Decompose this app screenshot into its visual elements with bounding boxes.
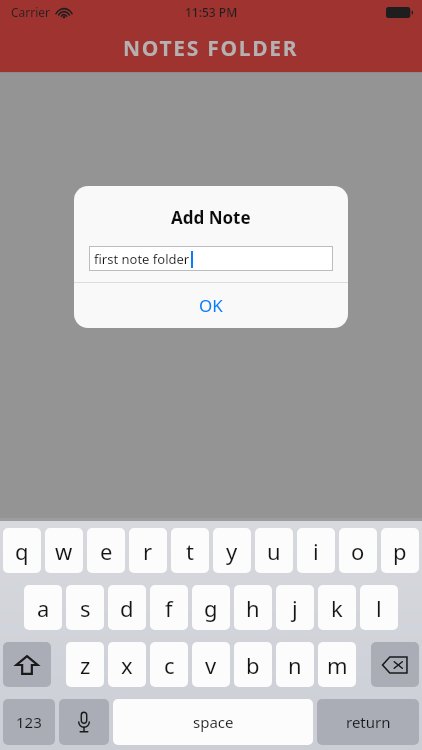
staticText: NOTES FOLDER xyxy=(123,34,299,63)
button[interactable]: z xyxy=(66,642,104,687)
staticText: Carrier xyxy=(11,4,51,20)
staticText: x xyxy=(121,650,133,680)
staticText: t xyxy=(186,536,194,566)
button[interactable]: Shift xyxy=(3,642,51,687)
button[interactable]: x xyxy=(108,642,146,687)
staticText: n xyxy=(288,650,302,680)
button[interactable]: o xyxy=(339,528,377,573)
staticText: r xyxy=(143,536,153,566)
button[interactable]: Dictation xyxy=(59,699,109,745)
staticText: first note folder xyxy=(94,250,190,268)
button[interactable]: a xyxy=(24,585,62,630)
staticText: return xyxy=(346,712,391,732)
staticText: v xyxy=(205,650,217,680)
button[interactable]: m xyxy=(318,642,356,687)
staticText: d xyxy=(120,593,134,623)
button[interactable]: b xyxy=(234,642,272,687)
staticText: h xyxy=(246,593,260,623)
button[interactable]: f xyxy=(150,585,188,630)
button[interactable]: q xyxy=(3,528,41,573)
staticText: e xyxy=(100,536,113,566)
staticText: k xyxy=(331,593,343,623)
button[interactable]: t xyxy=(171,528,209,573)
button[interactable]: first note folder xyxy=(89,246,333,271)
button[interactable]: 123 xyxy=(3,699,55,745)
staticText: c xyxy=(164,650,175,680)
staticText: u xyxy=(267,536,281,566)
button[interactable]: space xyxy=(113,699,313,745)
staticText: a xyxy=(37,593,50,623)
button[interactable]: p xyxy=(381,528,419,573)
staticText: s xyxy=(80,593,91,623)
button[interactable]: return xyxy=(317,699,419,745)
staticText: f xyxy=(165,593,173,623)
staticText: p xyxy=(393,536,407,566)
button[interactable]: h xyxy=(234,585,272,630)
button[interactable]: c xyxy=(150,642,188,687)
button[interactable]: n xyxy=(276,642,314,687)
button[interactable]: s xyxy=(66,585,104,630)
staticText: z xyxy=(80,650,91,680)
staticText: w xyxy=(55,536,73,566)
staticText: b xyxy=(246,650,260,680)
button[interactable]: k xyxy=(318,585,356,630)
staticText: q xyxy=(15,536,29,566)
staticText: m xyxy=(327,650,348,680)
button[interactable]: r xyxy=(129,528,167,573)
button[interactable]: Backspace xyxy=(371,642,419,687)
staticText: space xyxy=(193,712,234,732)
staticText: OK xyxy=(199,294,223,317)
button[interactable]: l xyxy=(360,585,398,630)
button[interactable]: d xyxy=(108,585,146,630)
button[interactable]: OK xyxy=(74,283,348,328)
staticText: y xyxy=(226,536,238,566)
staticText: Add Note xyxy=(171,206,251,229)
staticText: g xyxy=(204,593,218,623)
button[interactable]: y xyxy=(213,528,251,573)
button[interactable]: j xyxy=(276,585,314,630)
button[interactable]: e xyxy=(87,528,125,573)
button[interactable]: u xyxy=(255,528,293,573)
staticText: j xyxy=(292,593,298,623)
staticText: l xyxy=(376,593,382,623)
button[interactable]: v xyxy=(192,642,230,687)
staticText: 123 xyxy=(16,712,42,732)
button[interactable]: w xyxy=(45,528,83,573)
button[interactable]: i xyxy=(297,528,335,573)
staticText: 11:53 PM xyxy=(185,4,238,20)
staticText: o xyxy=(351,536,365,566)
staticText: i xyxy=(313,536,319,566)
button[interactable]: g xyxy=(192,585,230,630)
